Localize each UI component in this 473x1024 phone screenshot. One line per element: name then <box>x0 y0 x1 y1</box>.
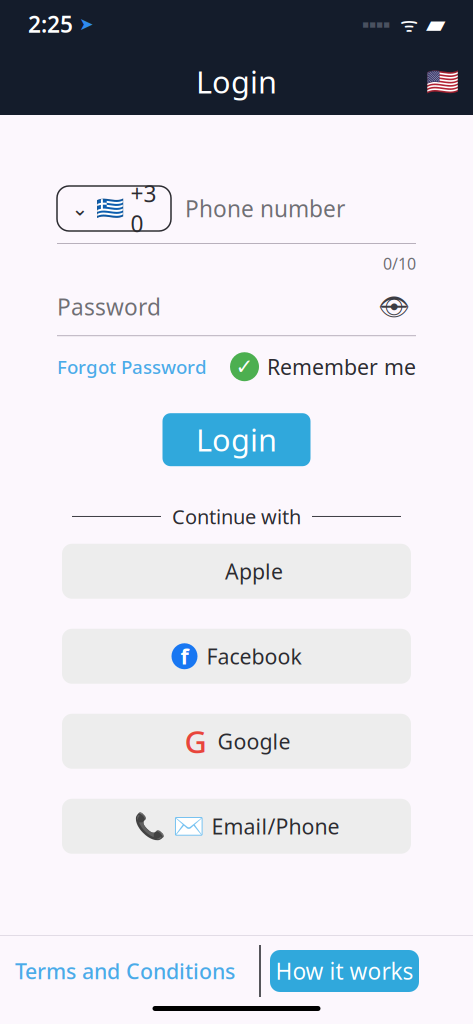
staticText: ⌄ <box>71 197 88 220</box>
staticText: Google <box>217 727 290 755</box>
button[interactable]: Show password <box>372 288 416 325</box>
staticText: Login <box>196 61 277 102</box>
staticText: Forgot Password <box>57 354 207 379</box>
staticText: 📞 <box>133 812 165 841</box>
button[interactable]: 📞 <box>62 799 411 854</box>
staticText: Remember me <box>267 352 416 381</box>
staticText: Phone number <box>185 193 345 223</box>
staticText: Terms and Conditions <box>15 957 235 985</box>
button[interactable]: G <box>62 714 411 769</box>
staticText: ▰ <box>418 10 445 38</box>
button[interactable]: How it works <box>270 950 419 992</box>
staticText: ▪▪▪▪ <box>362 18 390 30</box>
staticText: ✉️ <box>172 812 204 841</box>
staticText: G <box>184 721 206 762</box>
button[interactable]: Terms and Conditions <box>15 957 235 985</box>
staticText: 🇺🇸 <box>426 66 459 97</box>
staticText: 👁 <box>378 292 410 321</box>
button[interactable]: ⌄ <box>57 186 171 231</box>
staticText: +30 <box>130 178 156 239</box>
staticText: Apple <box>225 557 283 585</box>
button[interactable]: ✓ <box>230 352 416 381</box>
staticText: Continue with <box>172 503 301 530</box>
button[interactable]: Login <box>162 413 310 466</box>
staticText: Password <box>57 292 161 322</box>
button[interactable]: f <box>62 629 411 684</box>
staticText: 🇬🇷 <box>95 196 123 221</box>
staticText: ᯤ <box>390 11 418 37</box>
staticText: 2:25 <box>28 9 73 39</box>
staticText: 0/10 <box>383 253 416 274</box>
staticText: Facebook <box>206 642 301 670</box>
button[interactable]: Forgot Password <box>57 354 207 379</box>
button[interactable] <box>62 544 411 599</box>
staticText: f <box>180 642 188 670</box>
staticText: Email/Phone <box>211 812 339 840</box>
staticText: How it works <box>275 956 413 986</box>
staticText: ✓ <box>235 355 253 379</box>
staticText: ➤ <box>73 14 94 34</box>
button[interactable]: Change language <box>412 56 473 107</box>
staticText: Login <box>196 419 277 460</box>
